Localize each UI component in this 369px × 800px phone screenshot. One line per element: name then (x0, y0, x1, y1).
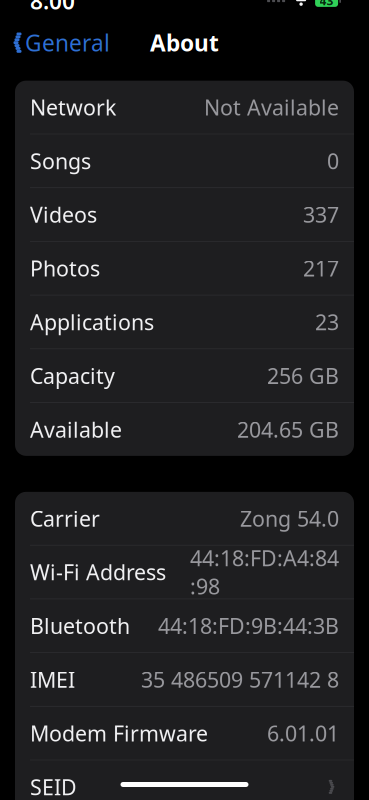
button[interactable]: Videos (15, 188, 354, 241)
button[interactable]: Wi-Fi Address (15, 546, 354, 599)
staticText: 44:18:FD:9B:44:3B (158, 612, 339, 640)
staticText: 217 (303, 254, 339, 282)
staticText: 337 (303, 200, 339, 229)
staticText: Applications (30, 308, 154, 336)
staticText: Modem Firmware (30, 719, 208, 747)
button[interactable]: Bluetooth (15, 599, 354, 652)
staticText: Carrier (30, 504, 100, 532)
staticText: IMEI (30, 665, 75, 694)
staticText: 35 486509 571142 8 (141, 665, 339, 694)
button[interactable]: Applications (15, 295, 354, 348)
staticText: Videos (30, 200, 97, 229)
staticText: Wi-Fi Address (30, 558, 166, 586)
button[interactable]: Photos (15, 242, 354, 295)
staticText: General (25, 28, 110, 58)
staticText: SEID (30, 773, 77, 800)
button[interactable]: SEID (15, 760, 354, 800)
staticText: Capacity (30, 361, 115, 390)
button[interactable]: Available (15, 403, 354, 456)
button[interactable]: IMEI (15, 653, 354, 706)
staticText: 44:18:FD:A4:84:98 (190, 544, 339, 600)
staticText: Songs (30, 147, 91, 175)
staticText: 8:00 (30, 0, 75, 16)
staticText: Not Available (204, 93, 339, 121)
button[interactable]: General (0, 21, 118, 65)
staticText: Available (30, 415, 122, 443)
button[interactable]: Capacity (15, 349, 354, 402)
staticText: 256 GB (267, 361, 339, 390)
button[interactable]: Songs (15, 134, 354, 187)
staticText: 43 (320, 0, 334, 9)
staticText: 23 (315, 308, 339, 336)
staticText: Photos (30, 254, 100, 282)
button[interactable]: Network (15, 81, 354, 134)
staticText: 6.01.01 (267, 719, 339, 747)
staticText: Zong 54.0 (240, 504, 339, 532)
button[interactable]: Carrier (15, 492, 354, 545)
staticText: 0 (327, 147, 339, 175)
button[interactable]: Modem Firmware (15, 707, 354, 760)
staticText: Network (30, 93, 116, 121)
staticText: About (150, 28, 219, 58)
staticText: 204.65 GB (237, 415, 339, 443)
staticText: Bluetooth (30, 612, 130, 640)
